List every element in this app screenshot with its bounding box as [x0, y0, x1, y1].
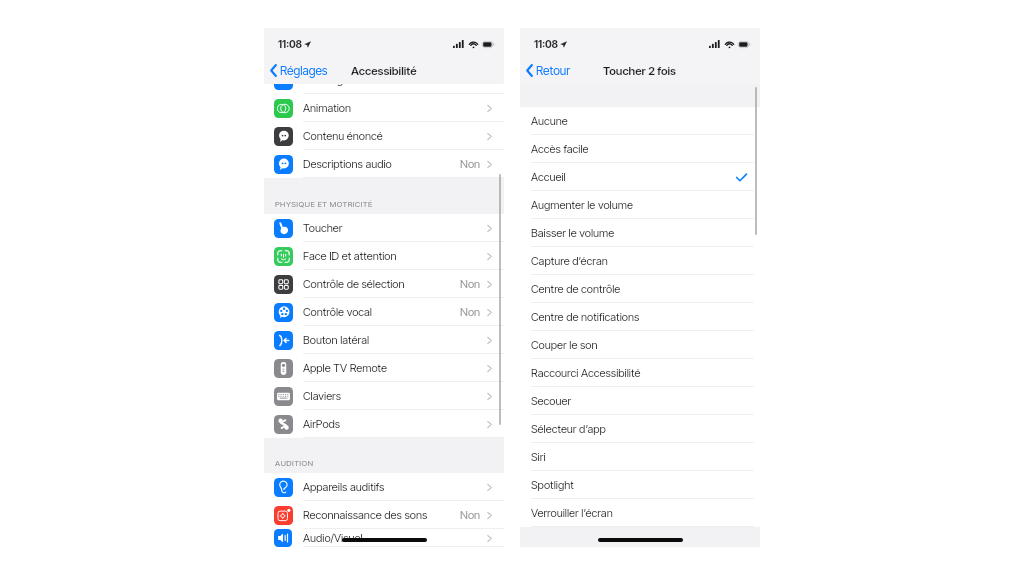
button[interactable]: Descriptions audio	[264, 150, 504, 178]
button[interactable]: Retour	[526, 63, 571, 78]
button[interactable]: Contenu énoncé	[264, 122, 504, 150]
button[interactable]: AirPods	[264, 410, 504, 438]
button[interactable]: Raccourci Accessibilité	[520, 359, 760, 387]
button[interactable]: Affichage et taille du texte	[264, 66, 504, 94]
staticText: Face ID et attention	[303, 249, 397, 263]
staticText: Centre de contrôle	[531, 282, 621, 296]
staticText: Contenu énoncé	[303, 129, 383, 143]
staticText: Sélecteur d’app	[531, 422, 606, 436]
staticText: Baisser le volume	[531, 226, 615, 240]
button[interactable]: Sélecteur d’app	[520, 415, 760, 443]
button[interactable]: Réglages	[270, 63, 328, 78]
staticText: Centre de notifications	[531, 310, 640, 324]
staticText: Accès facile	[531, 142, 589, 156]
button[interactable]: Toucher	[264, 214, 504, 242]
staticText: Accessibilité	[351, 64, 417, 78]
button[interactable]: Augmenter le volume	[520, 191, 760, 219]
staticText: Non	[460, 157, 481, 171]
staticText: Capture d’écran	[531, 254, 608, 268]
staticText: Claviers	[303, 389, 342, 403]
button[interactable]: Capture d’écran	[520, 247, 760, 275]
staticText: Contrôle vocal	[303, 305, 372, 319]
staticText: AirPods	[303, 417, 341, 431]
staticText: Non	[460, 305, 481, 319]
staticText: 11:08	[534, 38, 558, 50]
button[interactable]: Siri	[520, 443, 760, 471]
button[interactable]: Apple TV Remote	[264, 354, 504, 382]
staticText: Réglages	[280, 63, 328, 78]
button[interactable]: Contrôle de sélection	[264, 270, 504, 298]
staticText: Spotlight	[531, 478, 574, 492]
staticText: Animation	[303, 101, 352, 115]
button[interactable]: Contrôle vocal	[264, 298, 504, 326]
staticText: Accueil	[531, 170, 566, 184]
staticText: Affichage et taille du texte	[303, 73, 428, 87]
button[interactable]: Face ID et attention	[264, 242, 504, 270]
staticText: Raccourci Accessibilité	[531, 366, 641, 380]
button[interactable]: Animation	[264, 94, 504, 122]
staticText: Verrouiller l’écran	[531, 506, 613, 520]
staticText: AUDITION	[275, 458, 314, 468]
staticText: Non	[460, 508, 481, 522]
staticText: Descriptions audio	[303, 157, 392, 171]
staticText: Siri	[531, 450, 546, 464]
staticText: Retour	[536, 63, 571, 78]
staticText: Toucher 2 fois	[603, 64, 677, 78]
button[interactable]: Claviers	[264, 382, 504, 410]
button[interactable]: Aucune	[520, 107, 760, 135]
button[interactable]: Secouer	[520, 387, 760, 415]
staticText: Toucher	[303, 221, 343, 235]
button[interactable]: Reconnaissance des sons	[264, 501, 504, 529]
button[interactable]: Accueil	[520, 163, 760, 191]
staticText: Non	[460, 277, 481, 291]
button[interactable]: Couper le son	[520, 331, 760, 359]
staticText: PHYSIQUE ET MOTRICITÉ	[275, 199, 373, 209]
staticText: Appareils auditifs	[303, 480, 385, 494]
button[interactable]: Bouton latéral	[264, 326, 504, 354]
button[interactable]: Baisser le volume	[520, 219, 760, 247]
staticText: Couper le son	[531, 338, 598, 352]
button[interactable]: Verrouiller l’écran	[520, 499, 760, 527]
button[interactable]: Appareils auditifs	[264, 473, 504, 501]
staticText: 11:08	[278, 38, 302, 50]
button[interactable]: Accès facile	[520, 135, 760, 163]
staticText: Augmenter le volume	[531, 198, 633, 212]
button[interactable]: Audio/Visuel	[264, 529, 504, 547]
staticText: Aucune	[531, 114, 568, 128]
staticText: Audio/Visuel	[303, 531, 363, 545]
button[interactable]: Centre de notifications	[520, 303, 760, 331]
button[interactable]: Spotlight	[520, 471, 760, 499]
staticText: Secouer	[531, 394, 572, 408]
staticText: Bouton latéral	[303, 333, 370, 347]
button[interactable]: Centre de contrôle	[520, 275, 760, 303]
staticText: Contrôle de sélection	[303, 277, 405, 291]
staticText: Reconnaissance des sons	[303, 508, 428, 522]
staticText: Apple TV Remote	[303, 361, 387, 375]
